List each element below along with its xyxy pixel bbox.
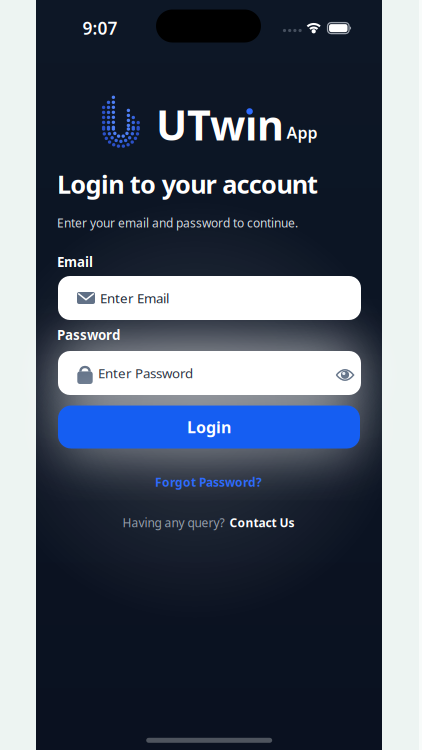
staticText: Forgot Password? [155, 474, 262, 490]
staticText: Contact Us [229, 514, 294, 530]
staticText: Login to your account [57, 167, 318, 201]
staticText: 9:07 [82, 16, 117, 39]
button[interactable]: Forgot Password? [155, 474, 262, 490]
button[interactable]: Show password [328, 358, 362, 392]
button[interactable]: Contact Us [229, 514, 294, 530]
staticText: Login [187, 416, 231, 438]
button[interactable]: Enter Email [58, 276, 361, 320]
button[interactable]: Login [58, 405, 360, 448]
button[interactable]: Enter Password [58, 351, 361, 395]
staticText: Enter Password [98, 364, 193, 382]
staticText: Enter Email [100, 289, 169, 307]
staticText: Email [57, 253, 93, 271]
staticText: Enter your email and password to continu… [57, 215, 298, 231]
staticText: Having any query? [122, 514, 224, 530]
staticText: UTwın [156, 97, 284, 152]
staticText: Password [57, 326, 120, 344]
staticText: App [286, 122, 317, 143]
